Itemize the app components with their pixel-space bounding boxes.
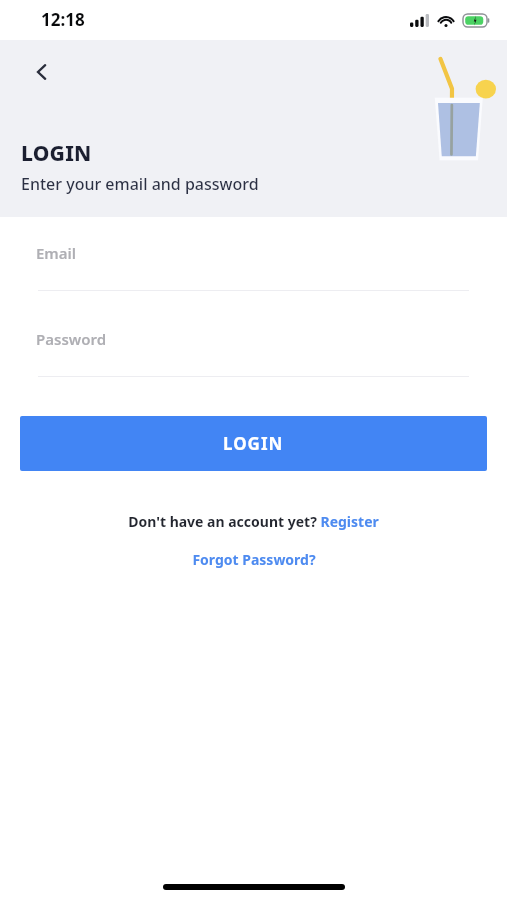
staticText: Don't have an account yet? Register: [128, 512, 379, 531]
button[interactable]: Don't have an account yet? Register: [0, 512, 507, 531]
button[interactable]: Forgot Password?: [0, 550, 507, 569]
staticText: LOGIN: [21, 139, 92, 168]
staticText: Email: [36, 243, 77, 263]
staticText: Enter your email and password: [21, 173, 259, 195]
staticText: LOGIN: [223, 432, 284, 455]
button[interactable]: Password: [0, 329, 507, 377]
button[interactable]: Email: [0, 243, 507, 291]
button[interactable]: LOGIN: [20, 416, 487, 471]
staticText: Password: [36, 329, 107, 349]
button[interactable]: Back: [22, 52, 62, 92]
staticText: 12:18: [41, 8, 85, 31]
staticText: Forgot Password?: [192, 550, 316, 569]
